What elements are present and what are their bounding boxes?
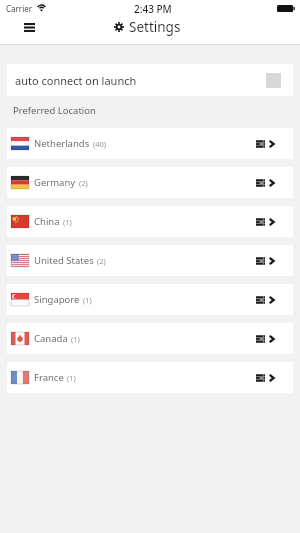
staticText: Canada [34,332,68,345]
staticText: France [34,371,64,384]
staticText: (2) [79,178,88,188]
staticText: China [34,215,60,228]
button[interactable]: auto connect on launch [7,64,293,96]
button[interactable]: Germany [7,167,293,198]
staticText: (1) [71,334,80,344]
button[interactable]: Netherlands [7,128,293,159]
button[interactable]: United States [7,245,293,276]
staticText: (2) [97,256,106,266]
staticText: Germany [34,176,76,189]
staticText: Settings [129,18,181,36]
staticText: United States [34,254,94,267]
staticText: Singapore [34,293,80,306]
button[interactable]: Singapore [7,284,293,315]
staticText: (40) [93,139,107,149]
staticText: (1) [67,373,76,383]
staticText: Netherlands [34,137,90,150]
button[interactable]: Canada [7,323,293,354]
staticText: Carrier [6,3,33,14]
button[interactable]: France [7,362,293,393]
staticText: (1) [83,295,92,305]
staticText: (1) [63,217,72,227]
staticText: 2:43 PM [134,2,172,16]
button[interactable]: China [7,206,293,237]
staticText: auto connect on launch [15,73,137,88]
staticText: Preferred Location [13,104,96,117]
button[interactable]: Menu [18,16,40,38]
